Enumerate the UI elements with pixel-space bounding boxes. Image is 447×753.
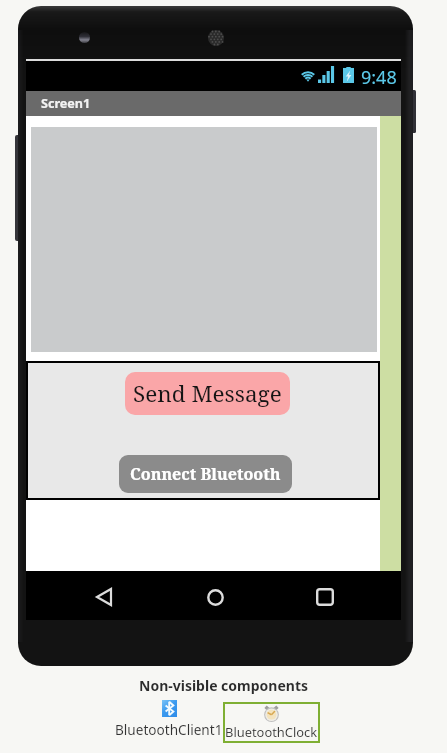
button[interactable]: BluetoothClient1 (115, 700, 223, 739)
staticText: Screen1 (41, 95, 91, 112)
button[interactable]: Home (195, 577, 235, 617)
staticText: BluetoothClock (225, 723, 318, 741)
staticText: 9:48 (361, 65, 397, 90)
button[interactable]: BluetoothClock (223, 702, 320, 743)
staticText: BluetoothClient1 (115, 720, 223, 739)
button[interactable]: Back (84, 577, 124, 617)
staticText: Non-visible components (139, 676, 309, 695)
button[interactable]: Send Message (125, 372, 290, 415)
button[interactable]: Connect Bluetooth (119, 455, 292, 493)
button[interactable]: Recent apps (305, 577, 345, 617)
staticText: Send Message (133, 378, 282, 409)
staticText: Connect Bluetooth (130, 463, 281, 485)
